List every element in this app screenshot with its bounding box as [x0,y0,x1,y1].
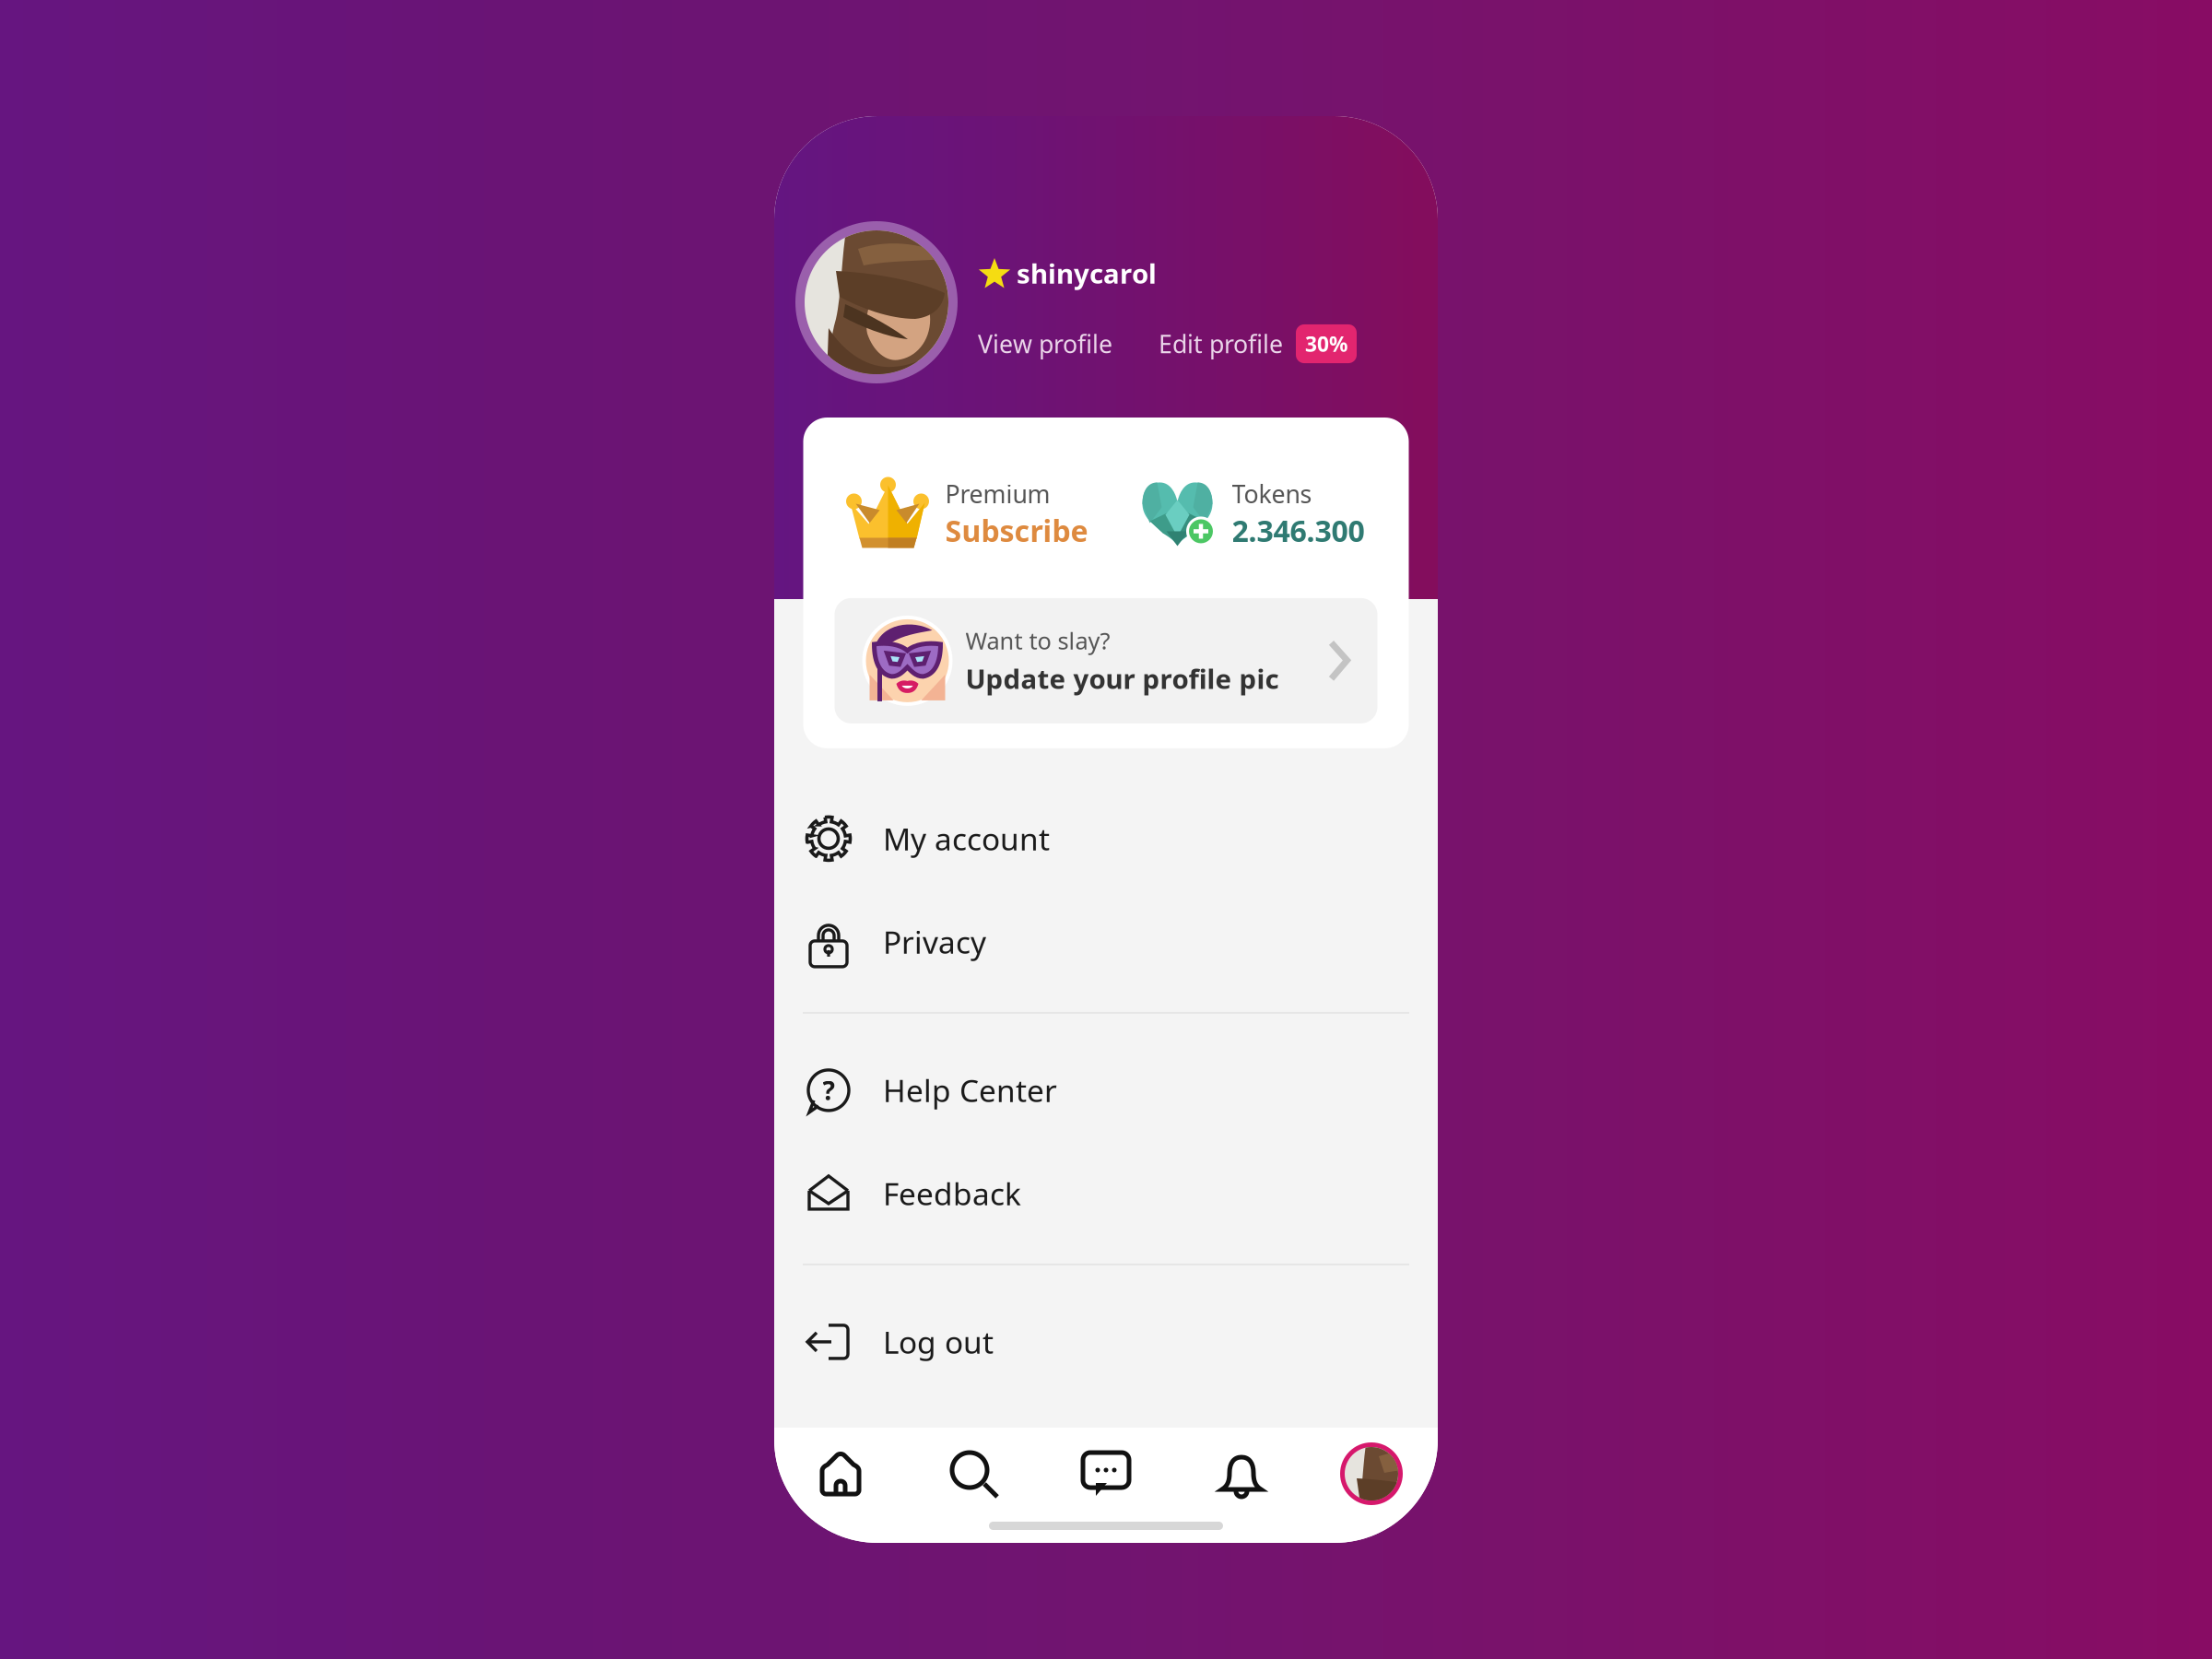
staticText: ? [823,1073,835,1107]
staticText: Want to slay? [965,625,1110,656]
staticText: Help Center [883,1070,1057,1111]
button[interactable]: Home [819,1451,862,1497]
staticText: My account [883,818,1050,859]
button[interactable]: Notifications [1218,1451,1260,1497]
button[interactable]: View profile [978,327,1112,360]
button[interactable]: Profile photo [795,221,958,383]
button[interactable]: Messages [1083,1452,1129,1496]
staticText: 30% [1305,330,1347,358]
staticText: Log out [883,1321,994,1362]
button[interactable]: Feedback [774,1142,1438,1245]
staticText: shinycarol [1017,255,1157,291]
button[interactable]: Edit profile [1159,324,1357,363]
button[interactable]: Privacy [774,890,1438,993]
staticText: Tokens [1232,477,1312,510]
staticText: 2.346.300 [1232,511,1365,550]
button[interactable]: Want to slay? [835,598,1377,723]
button[interactable]: Search [951,1451,995,1497]
button[interactable]: My account [774,787,1438,890]
staticText: Premium [945,477,1050,510]
staticText: Privacy [883,921,986,962]
staticText: View profile [978,327,1112,360]
button[interactable]: Tokens [1141,477,1365,550]
staticText: Edit profile [1159,327,1283,360]
staticText: Subscribe [945,511,1088,550]
button[interactable]: Profile [1340,1442,1403,1505]
staticText: Update your profile pic [965,661,1279,697]
button[interactable]: ? [774,1039,1438,1142]
button[interactable]: Premium [847,477,1088,550]
button[interactable]: Log out [774,1290,1438,1393]
staticText: Feedback [883,1173,1021,1214]
